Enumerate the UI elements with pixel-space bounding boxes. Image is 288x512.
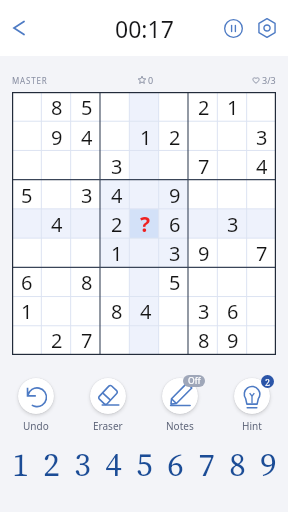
button[interactable]: 6 xyxy=(12,268,42,297)
button[interactable] xyxy=(160,326,189,355)
button[interactable]: 8 xyxy=(189,326,218,355)
button[interactable] xyxy=(12,326,42,355)
button[interactable]: 6 xyxy=(160,441,191,487)
staticText: 4 xyxy=(51,211,63,238)
button[interactable]: Undo xyxy=(0,373,72,433)
button[interactable] xyxy=(42,152,72,181)
button[interactable] xyxy=(102,268,131,297)
button[interactable] xyxy=(12,239,42,268)
button[interactable] xyxy=(102,122,131,152)
button[interactable]: 7 xyxy=(189,152,218,181)
button[interactable] xyxy=(218,239,247,268)
button[interactable]: 4 xyxy=(72,122,102,152)
button[interactable]: 4 xyxy=(42,210,72,239)
button[interactable] xyxy=(42,181,72,210)
button[interactable]: 4 xyxy=(98,441,129,487)
button[interactable] xyxy=(247,268,276,297)
button[interactable] xyxy=(42,268,72,297)
button[interactable]: 9 xyxy=(189,239,218,268)
staticText: Eraser xyxy=(93,419,123,433)
button[interactable] xyxy=(247,297,276,326)
button[interactable] xyxy=(218,122,247,152)
button[interactable]: 3 xyxy=(67,441,98,487)
button[interactable] xyxy=(72,152,102,181)
button[interactable]: 3 xyxy=(102,152,131,181)
button[interactable]: Off xyxy=(144,373,216,433)
button[interactable]: 2 xyxy=(216,373,288,433)
button[interactable] xyxy=(247,210,276,239)
button[interactable]: 4 xyxy=(247,152,276,181)
button[interactable] xyxy=(189,268,218,297)
button[interactable]: 9 xyxy=(218,326,247,355)
button[interactable]: 4 xyxy=(102,181,131,210)
staticText: 1 xyxy=(140,124,152,151)
button[interactable] xyxy=(189,181,218,210)
button[interactable]: 2 xyxy=(42,326,72,355)
button[interactable]: 5 xyxy=(72,92,102,122)
button[interactable] xyxy=(131,181,160,210)
button[interactable]: Eraser xyxy=(72,373,144,433)
button[interactable] xyxy=(72,297,102,326)
button[interactable]: 5 xyxy=(12,181,42,210)
button[interactable]: 1 xyxy=(131,122,160,152)
button[interactable] xyxy=(42,297,72,326)
button[interactable]: 4 xyxy=(131,297,160,326)
button[interactable]: 3 xyxy=(247,122,276,152)
button[interactable] xyxy=(12,210,42,239)
button[interactable]: 6 xyxy=(160,210,189,239)
button[interactable]: 8 xyxy=(222,441,253,487)
button[interactable] xyxy=(218,152,247,181)
button[interactable]: 3 xyxy=(72,181,102,210)
button[interactable]: 8 xyxy=(102,297,131,326)
button[interactable]: 1 xyxy=(4,441,36,487)
button[interactable] xyxy=(102,326,131,355)
button[interactable]: 6 xyxy=(218,297,247,326)
button[interactable]: 8 xyxy=(72,268,102,297)
button[interactable] xyxy=(247,92,276,122)
button[interactable]: 7 xyxy=(72,326,102,355)
button[interactable] xyxy=(102,92,131,122)
button[interactable] xyxy=(12,92,42,122)
button[interactable] xyxy=(131,268,160,297)
button[interactable]: Settings xyxy=(250,11,284,45)
button[interactable]: 5 xyxy=(160,268,189,297)
button[interactable] xyxy=(131,239,160,268)
button[interactable]: 9 xyxy=(42,122,72,152)
button[interactable]: 3 xyxy=(218,210,247,239)
button[interactable]: 3 xyxy=(160,239,189,268)
button[interactable] xyxy=(189,122,218,152)
button[interactable]: 1 xyxy=(102,239,131,268)
button[interactable]: Pause xyxy=(216,11,250,45)
button[interactable]: 2 xyxy=(160,122,189,152)
button[interactable] xyxy=(131,326,160,355)
button[interactable]: 8 xyxy=(42,92,72,122)
button[interactable] xyxy=(189,210,218,239)
button[interactable] xyxy=(72,239,102,268)
button[interactable] xyxy=(72,210,102,239)
button[interactable] xyxy=(12,152,42,181)
button[interactable] xyxy=(247,181,276,210)
button[interactable]: 3 xyxy=(189,297,218,326)
button[interactable]: 1 xyxy=(218,92,247,122)
button[interactable]: 7 xyxy=(247,239,276,268)
button[interactable] xyxy=(247,326,276,355)
button[interactable] xyxy=(160,152,189,181)
button[interactable] xyxy=(12,122,42,152)
button[interactable] xyxy=(160,92,189,122)
button[interactable] xyxy=(218,181,247,210)
button[interactable]: 7 xyxy=(191,441,222,487)
button[interactable]: 2 xyxy=(36,441,67,487)
button[interactable]: 5 xyxy=(129,441,160,487)
button[interactable] xyxy=(218,268,247,297)
button[interactable] xyxy=(42,239,72,268)
button[interactable]: 9 xyxy=(253,441,284,487)
button[interactable] xyxy=(131,152,160,181)
button[interactable] xyxy=(160,297,189,326)
button[interactable]: 2 xyxy=(189,92,218,122)
button[interactable]: 2 xyxy=(102,210,131,239)
button[interactable]: ? xyxy=(131,210,160,239)
button[interactable]: Back xyxy=(3,12,35,44)
button[interactable]: 1 xyxy=(12,297,42,326)
button[interactable] xyxy=(131,92,160,122)
button[interactable]: 9 xyxy=(160,181,189,210)
